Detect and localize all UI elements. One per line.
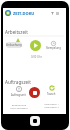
staticText: Auftragszeit [5,79,32,85]
staticText: Stempelung [46,46,61,50]
staticText: Tausch [47,92,56,96]
staticText: Bezeichnung nicht verfügbar [10,103,28,109]
button[interactable]: Arbeitszeit [5,29,28,35]
button[interactable]: Menu [55,11,60,16]
button[interactable]: Home [30,116,40,126]
staticText: Einbuchung [6,43,22,47]
button[interactable]: Start [30,40,41,51]
button[interactable]: Auftragszeit [5,79,32,85]
staticText: 0:00 Uhr [31,55,42,59]
staticText: Auftragszeit [11,93,26,97]
button[interactable]: Tausch [41,85,62,108]
button[interactable]: Stop [29,87,40,98]
button[interactable]: Einbuchung [6,42,22,48]
staticText: Arbeitszeit [5,29,28,35]
button[interactable]: Stempelung [43,41,63,50]
button[interactable]: Filter [50,11,55,16]
button[interactable]: Auftragszeit [8,86,29,109]
staticText: Mitarbeiter 1 Mitarbeiter 2 [44,102,59,108]
staticText: ZEIT-DOKU [13,11,35,16]
